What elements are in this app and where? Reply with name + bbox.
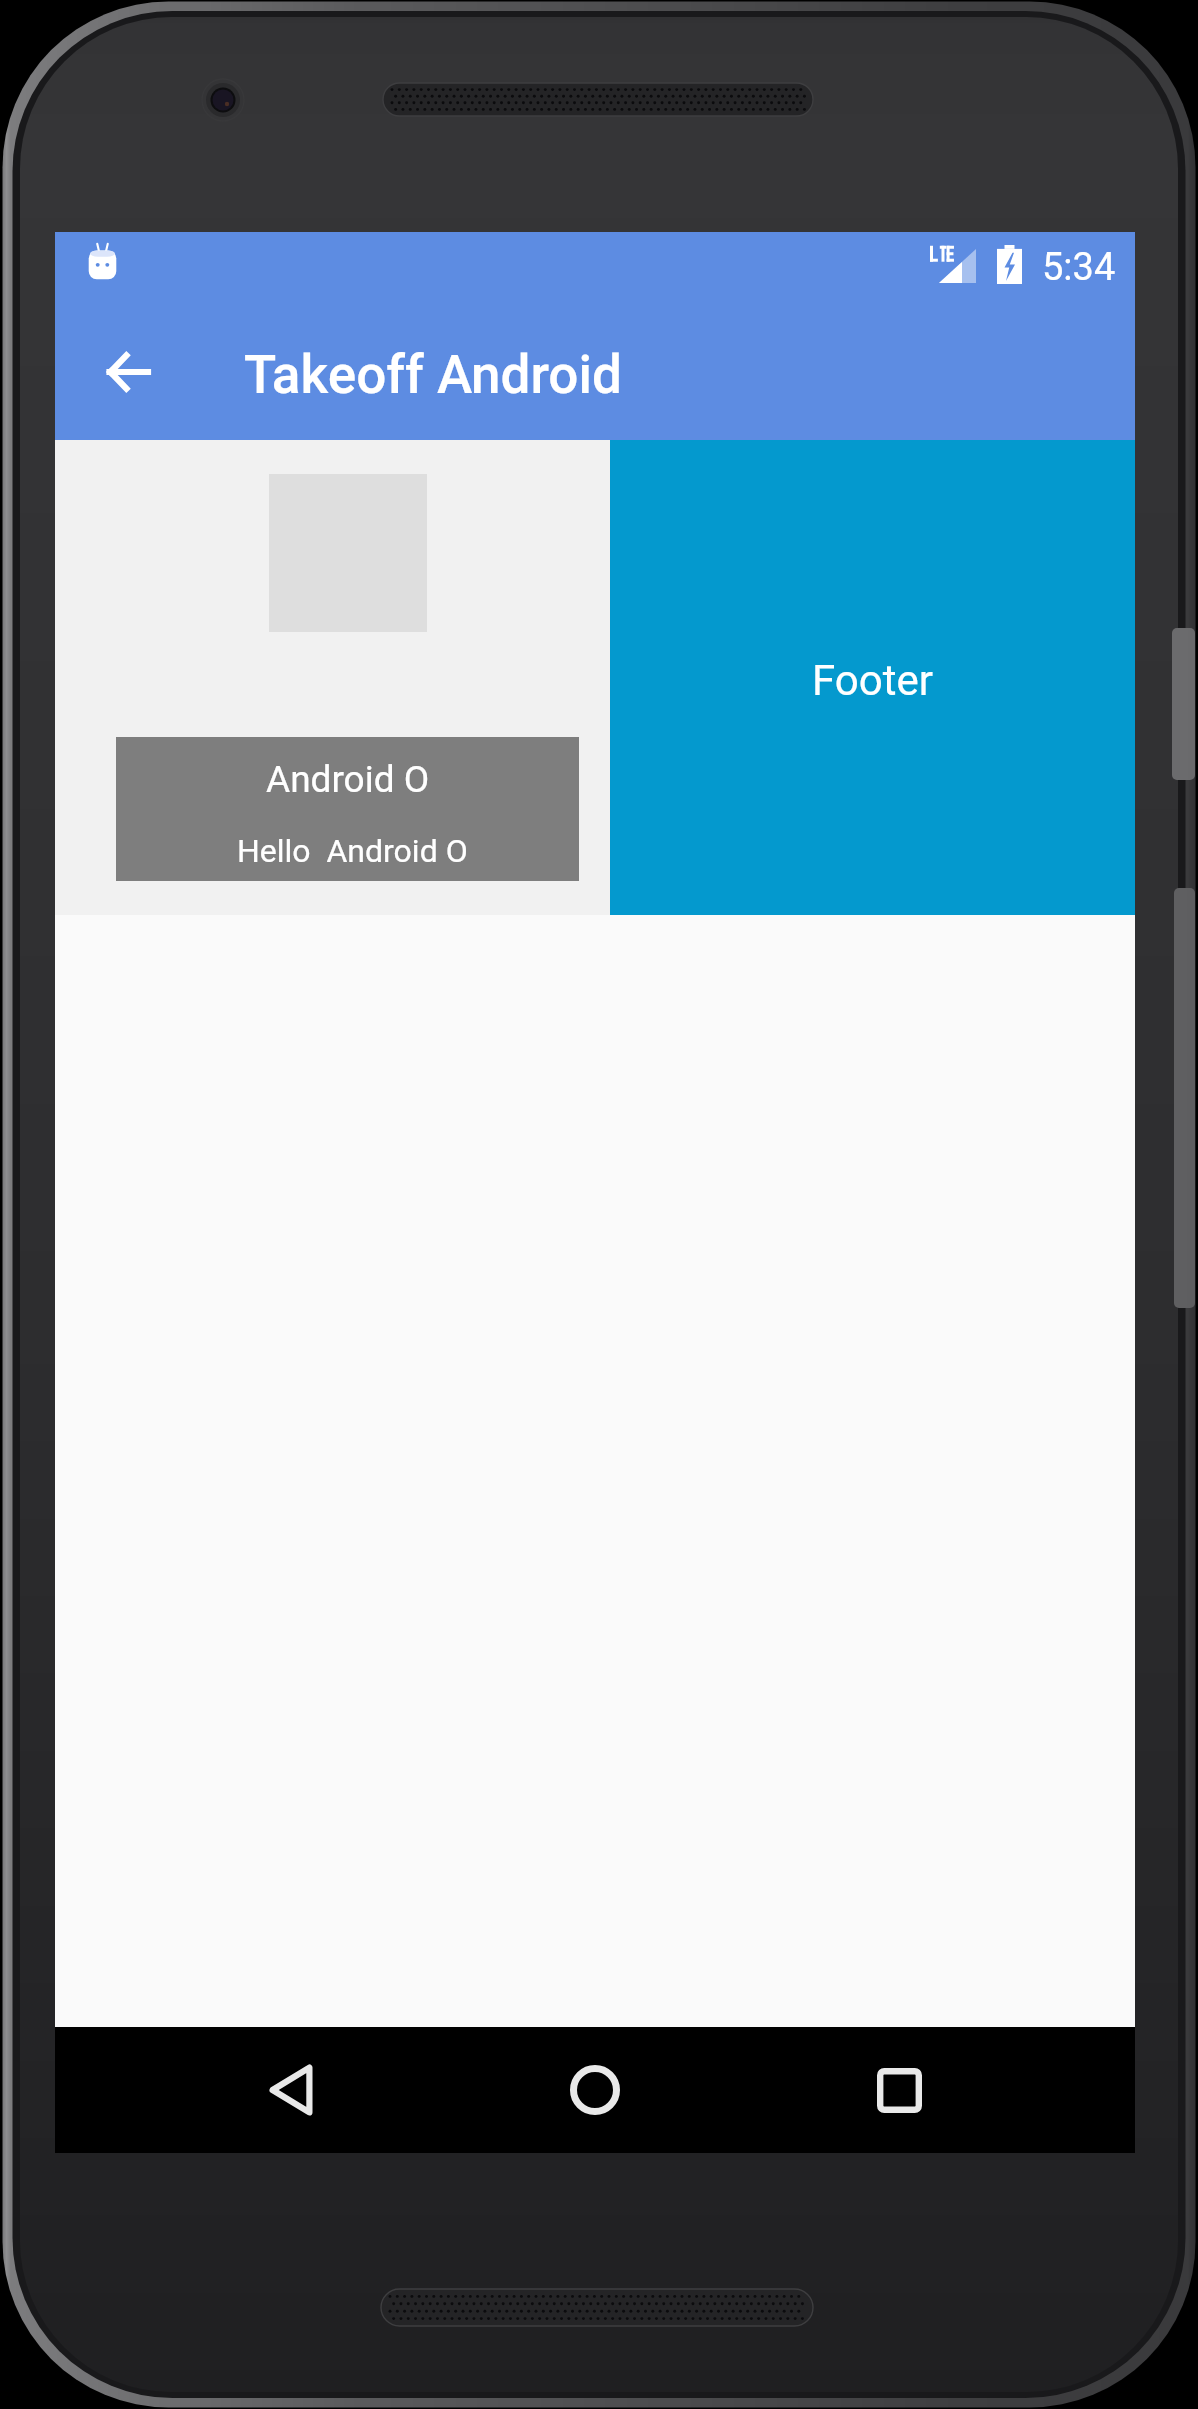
button[interactable]: Navigate up	[72, 305, 184, 438]
staticText: Footer	[812, 656, 933, 705]
button[interactable]: Android O	[116, 737, 579, 881]
staticText: Hello Android O	[237, 832, 468, 870]
button[interactable]: Back	[231, 2027, 351, 2153]
staticText: 5:34	[1042, 245, 1116, 290]
button[interactable]: Home	[535, 2027, 655, 2153]
button[interactable]: Recent apps	[839, 2027, 959, 2153]
staticText: Takeoff Android	[244, 344, 622, 406]
staticText: Android O	[266, 758, 430, 801]
button[interactable]: Footer	[610, 440, 1135, 915]
